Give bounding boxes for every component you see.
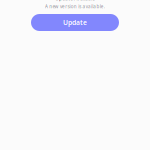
button[interactable]: Update <box>31 14 119 31</box>
staticText: A new version is available. <box>45 3 105 10</box>
staticText: Update <box>63 18 87 27</box>
staticText: Update Available <box>55 0 95 2</box>
